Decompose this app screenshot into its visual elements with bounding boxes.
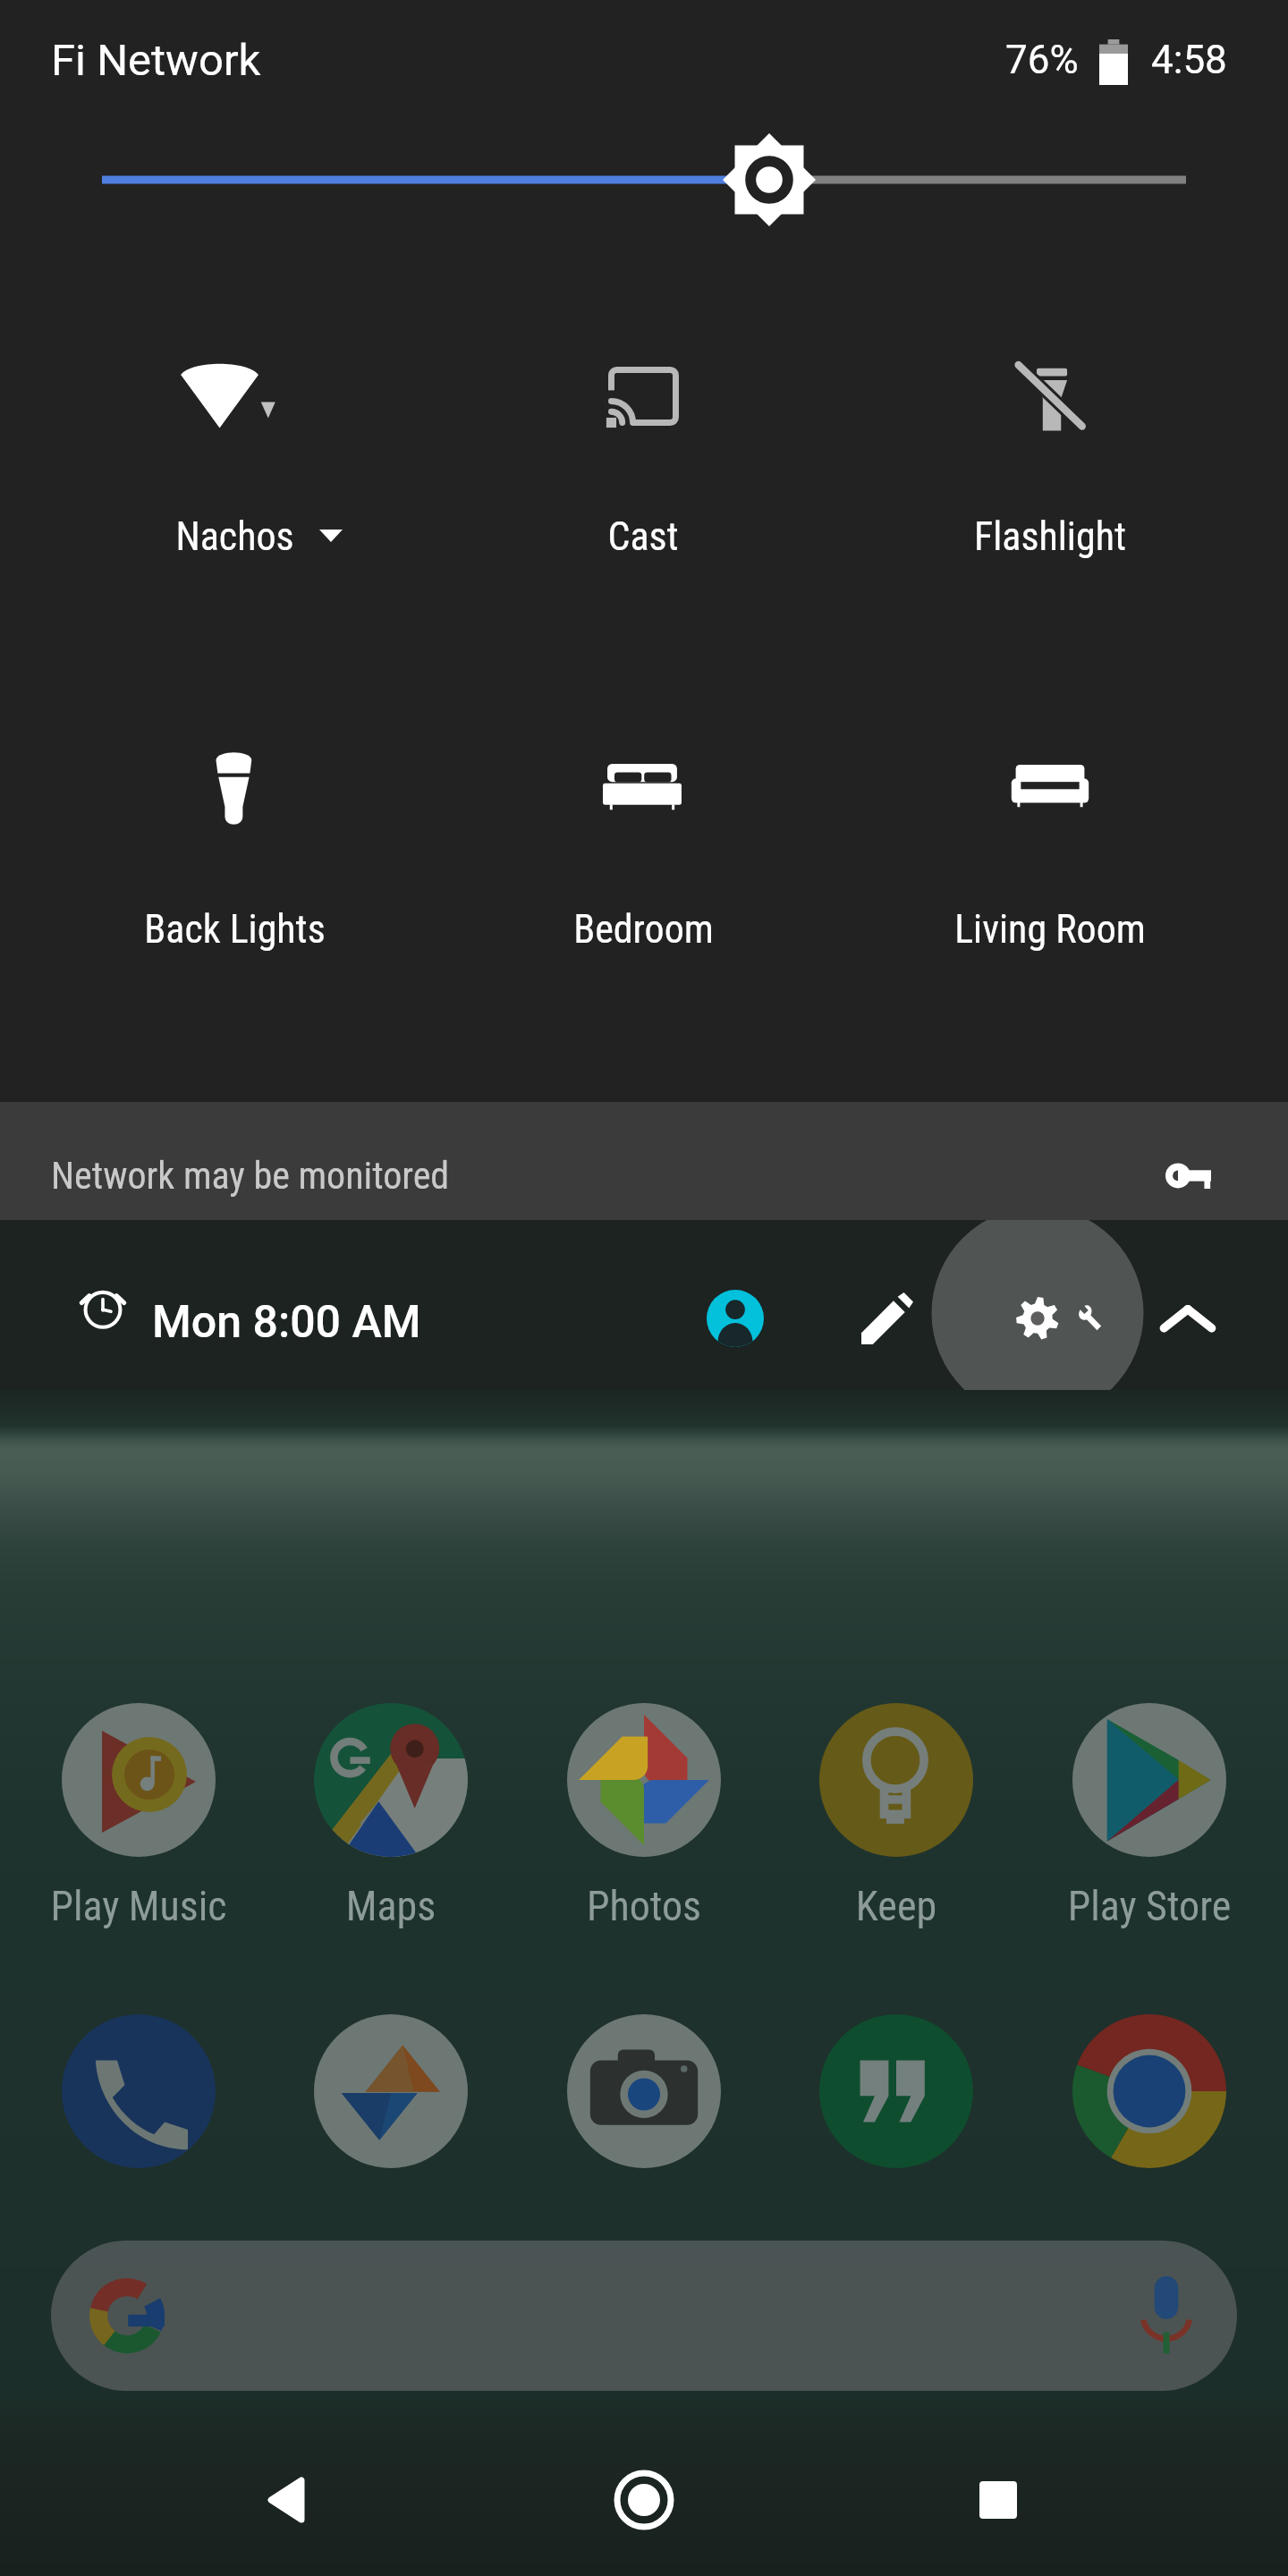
button[interactable]: phone [13, 2004, 264, 2227]
button[interactable]: Brightness [0, 109, 1288, 252]
button[interactable]: camera [519, 2004, 769, 2227]
button[interactable] [473, 295, 813, 617]
button[interactable]: Play Music [13, 1692, 264, 1916]
button[interactable] [473, 690, 813, 1012]
staticText: Keep [771, 1882, 1021, 1930]
button[interactable]: Home [559, 2415, 729, 2576]
staticText: Cast [607, 513, 679, 560]
button[interactable]: drive [266, 2004, 516, 2227]
button[interactable] [880, 690, 1220, 1012]
staticText: 76% [1005, 37, 1079, 83]
staticText: Network may be monitored [51, 1154, 450, 1198]
button[interactable]: Maps [266, 1692, 516, 1916]
staticText: Living Room [954, 906, 1146, 953]
button[interactable] [64, 295, 404, 617]
staticText: Mon 8:00 AM [152, 1296, 421, 1349]
button[interactable] [51, 2241, 1237, 2391]
button[interactable]: chrome [1024, 2004, 1275, 2227]
button[interactable]: Network may be monitored [0, 1102, 1288, 1220]
button[interactable]: Collapse [1127, 1258, 1249, 1379]
button[interactable]: User [674, 1258, 796, 1379]
staticText: Nachos [175, 513, 294, 560]
button[interactable] [880, 295, 1220, 617]
button[interactable]: Edit [826, 1258, 948, 1379]
staticText: Maps [266, 1882, 516, 1930]
staticText: Back Lights [144, 906, 326, 953]
staticText: Bedroom [573, 906, 714, 953]
staticText: Photos [519, 1882, 769, 1930]
button[interactable]: Recents [913, 2415, 1083, 2576]
button[interactable]: Photos [519, 1692, 769, 1916]
button[interactable] [64, 690, 404, 1012]
staticText: Fi Network [51, 35, 261, 86]
button[interactable]: Back [201, 2415, 371, 2576]
staticText: Play Music [13, 1882, 264, 1930]
staticText: 4:58 [1151, 37, 1227, 83]
button[interactable]: Settings [998, 1258, 1120, 1379]
button[interactable]: Play Store [1024, 1692, 1275, 1916]
button[interactable]: Keep [771, 1692, 1021, 1916]
staticText: Flashlight [974, 513, 1126, 560]
staticText: Play Store [1024, 1882, 1275, 1930]
button[interactable]: hangouts [771, 2004, 1021, 2227]
